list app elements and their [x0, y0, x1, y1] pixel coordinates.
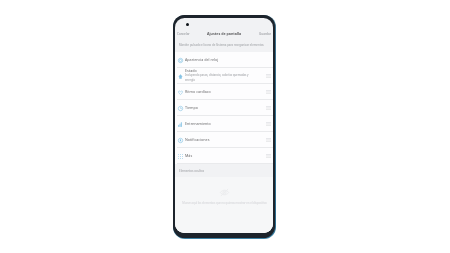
staticText: Apariencia del reloj — [185, 57, 219, 62]
button[interactable]: Apariencia del reloj — [175, 52, 273, 68]
staticText: Ritmo cardíaco — [185, 89, 211, 94]
staticText: Estado — [185, 68, 197, 73]
button[interactable]: Cancelar — [175, 32, 192, 36]
button[interactable]: Tiempo — [175, 100, 273, 116]
button[interactable]: Estado — [175, 68, 273, 84]
button[interactable]: Entrenamiento — [175, 116, 273, 132]
staticText: Mueve aquí los elementos que no quieras … — [182, 201, 267, 205]
button[interactable]: Más — [175, 148, 273, 164]
button[interactable]: Guardar — [257, 32, 273, 36]
button[interactable]: Ritmo cardíaco — [175, 84, 273, 100]
staticText: Cancelar — [177, 32, 190, 36]
staticText: Ajustes de pantalla — [207, 31, 242, 36]
staticText: Tiempo — [185, 105, 199, 110]
staticText: Entrenamiento — [185, 121, 211, 126]
staticText: Mantén pulsado el icono de Sistema para … — [179, 43, 264, 47]
button[interactable]: Notificaciones — [175, 132, 273, 148]
staticText: Elementos ocultos — [179, 169, 205, 173]
staticText: Incluyendo pasos, distancia, calorías qu… — [185, 73, 253, 82]
staticText: Guardar — [259, 32, 272, 36]
staticText: Notificaciones — [185, 137, 210, 142]
staticText: Más — [185, 153, 193, 158]
